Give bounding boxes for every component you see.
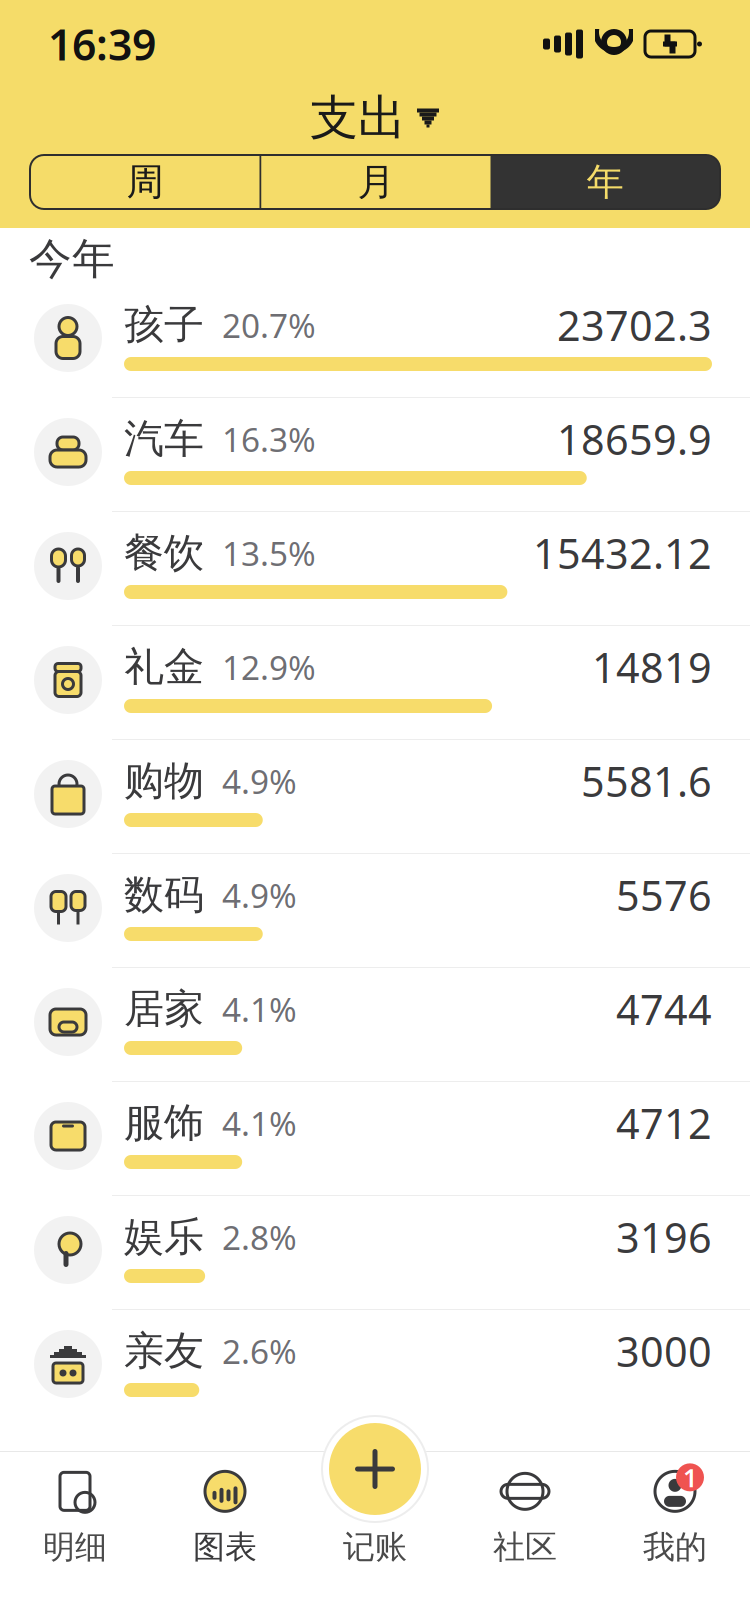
button[interactable]: 周 [30, 155, 259, 209]
staticText: 4712 [616, 1096, 712, 1150]
button[interactable]: 记账 [300, 1456, 450, 1576]
staticText: 13.5% [204, 531, 316, 575]
button[interactable]: 年 [490, 155, 719, 209]
staticText: 图表 [193, 1527, 257, 1567]
button[interactable]: 服饰 [0, 1082, 750, 1196]
button[interactable]: 支出 [300, 82, 450, 153]
staticText: 18659.9 [557, 412, 712, 466]
staticText: 数码 [124, 870, 204, 919]
staticText: 今年 [29, 233, 115, 285]
staticText: 亲友 [124, 1326, 204, 1375]
staticText: 4.9% [204, 873, 297, 917]
staticText: 娱乐 [124, 1212, 204, 1261]
button[interactable]: 明细 [0, 1456, 150, 1576]
staticText: 5576 [616, 868, 712, 922]
staticText: 23702.3 [557, 298, 712, 352]
staticText: 记账 [343, 1527, 407, 1567]
staticText: 4.9% [204, 759, 297, 803]
button[interactable]: 亲友 [0, 1310, 750, 1424]
button[interactable]: 娱乐 [0, 1196, 750, 1310]
staticText: 3000 [616, 1324, 712, 1378]
staticText: 2.6% [204, 1329, 297, 1373]
button[interactable]: 图表 [150, 1456, 300, 1576]
button[interactable]: 餐饮 [0, 512, 750, 626]
staticText: 12.9% [204, 645, 316, 689]
button[interactable]: 居家 [0, 968, 750, 1082]
staticText: 周 [126, 159, 163, 205]
button[interactable]: 月 [261, 155, 490, 209]
staticText: 16:39 [48, 16, 156, 72]
button[interactable]: 数码 [0, 854, 750, 968]
staticText: 2.8% [204, 1215, 297, 1259]
staticText: 3196 [616, 1210, 712, 1264]
staticText: 4.1% [204, 1101, 297, 1145]
staticText: 5581.6 [581, 754, 712, 808]
staticText: 月 [357, 159, 394, 205]
staticText: 支出 [310, 88, 406, 147]
staticText: 明细 [43, 1527, 107, 1567]
button[interactable]: 今年 [25, 215, 119, 297]
staticText: 汽车 [124, 414, 204, 463]
staticText: 4744 [616, 982, 712, 1036]
staticText: 购物 [124, 756, 204, 805]
staticText: 年 [586, 159, 623, 205]
button[interactable]: 记账 [320, 1414, 430, 1524]
staticText: 15432.12 [533, 526, 712, 580]
staticText: 孩子 [124, 300, 204, 349]
staticText: 14819 [592, 640, 712, 694]
staticText: 服饰 [124, 1098, 204, 1147]
button[interactable]: 购物 [0, 740, 750, 854]
button[interactable]: 孩子 [0, 284, 750, 398]
staticText: 礼金 [124, 642, 204, 691]
button[interactable]: 社区 [450, 1456, 600, 1576]
staticText: 餐饮 [124, 528, 204, 577]
button[interactable]: 1 [600, 1456, 750, 1576]
button[interactable]: 礼金 [0, 626, 750, 740]
staticText: 我的 [643, 1527, 707, 1567]
button[interactable]: 汽车 [0, 398, 750, 512]
staticText: 20.7% [204, 303, 316, 347]
staticText: 社区 [493, 1527, 557, 1567]
staticText: 16.3% [204, 417, 316, 461]
staticText: 1 [683, 1460, 697, 1494]
staticText: 4.1% [204, 987, 297, 1031]
staticText: 居家 [124, 984, 204, 1033]
